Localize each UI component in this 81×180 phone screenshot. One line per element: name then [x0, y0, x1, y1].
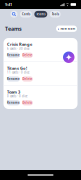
button[interactable]: Rename: [7, 76, 20, 82]
button[interactable]: Delete: [22, 100, 33, 105]
button[interactable]: Rename: [7, 100, 20, 105]
staticText: Rename: [7, 101, 20, 104]
button[interactable]: Search: [10, 11, 17, 18]
staticText: Cards: [22, 12, 30, 16]
staticText: Rename: [7, 53, 20, 57]
staticText: Delete: [22, 53, 32, 57]
staticText: Titans Go!: [7, 65, 27, 71]
button[interactable]: Tools: [50, 11, 61, 17]
staticText: 6 cards · 30 dice: [7, 47, 30, 50]
staticText: Team 3: [7, 89, 20, 94]
staticText: Delete: [22, 101, 32, 104]
staticText: 0 cards · 0 dice: [7, 94, 28, 98]
staticText: Teams: [5, 25, 22, 32]
button[interactable]: Delete: [22, 53, 33, 58]
staticText: Crisis Range: [7, 42, 32, 47]
staticText: Tools: [52, 12, 59, 16]
button[interactable]: Delete: [22, 76, 33, 82]
button[interactable]: Cards: [20, 11, 32, 17]
staticText: Teams: [36, 12, 45, 16]
button[interactable]: Rename: [7, 53, 20, 58]
button[interactable]: + New Team: [56, 25, 77, 32]
staticText: 11 cards · 0 dice: [7, 71, 30, 74]
staticText: 9:41: [5, 2, 12, 7]
staticText: Rename: [7, 77, 20, 81]
button[interactable]: Assistant: [63, 51, 74, 63]
staticText: + New Team: [57, 27, 75, 30]
button[interactable]: Teams: [34, 11, 47, 17]
staticText: Delete: [22, 77, 32, 81]
